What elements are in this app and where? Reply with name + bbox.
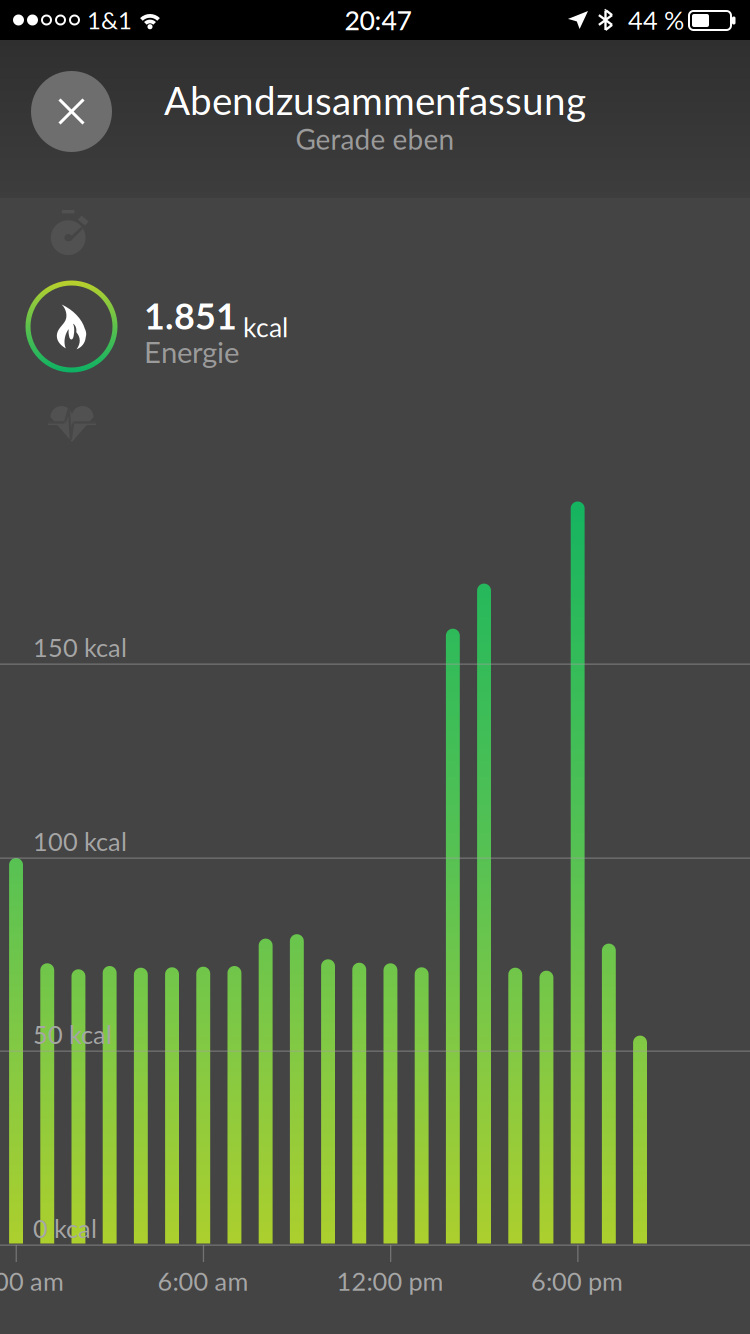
- staticText: 44 %: [628, 5, 684, 35]
- staticText: 20:47: [344, 4, 411, 36]
- staticText: Abendzusammenfassung: [164, 77, 586, 123]
- button[interactable]: Close: [31, 71, 112, 152]
- staticText: 150 kcal: [33, 632, 127, 662]
- staticText: 1.851: [144, 294, 237, 337]
- staticText: Gerade eben: [295, 122, 454, 156]
- staticText: 0 kcal: [33, 1213, 97, 1243]
- staticText: 1&1: [87, 6, 132, 34]
- staticText: 12:00 pm: [336, 1266, 443, 1296]
- staticText: 100 kcal: [33, 826, 127, 856]
- staticText: 6:00 pm: [531, 1266, 623, 1296]
- staticText: Energie: [144, 334, 239, 369]
- staticText: 00 am: [0, 1266, 64, 1296]
- staticText: 6:00 am: [157, 1266, 248, 1296]
- staticText: kcal: [243, 311, 288, 343]
- staticText: 50 kcal: [33, 1019, 112, 1049]
